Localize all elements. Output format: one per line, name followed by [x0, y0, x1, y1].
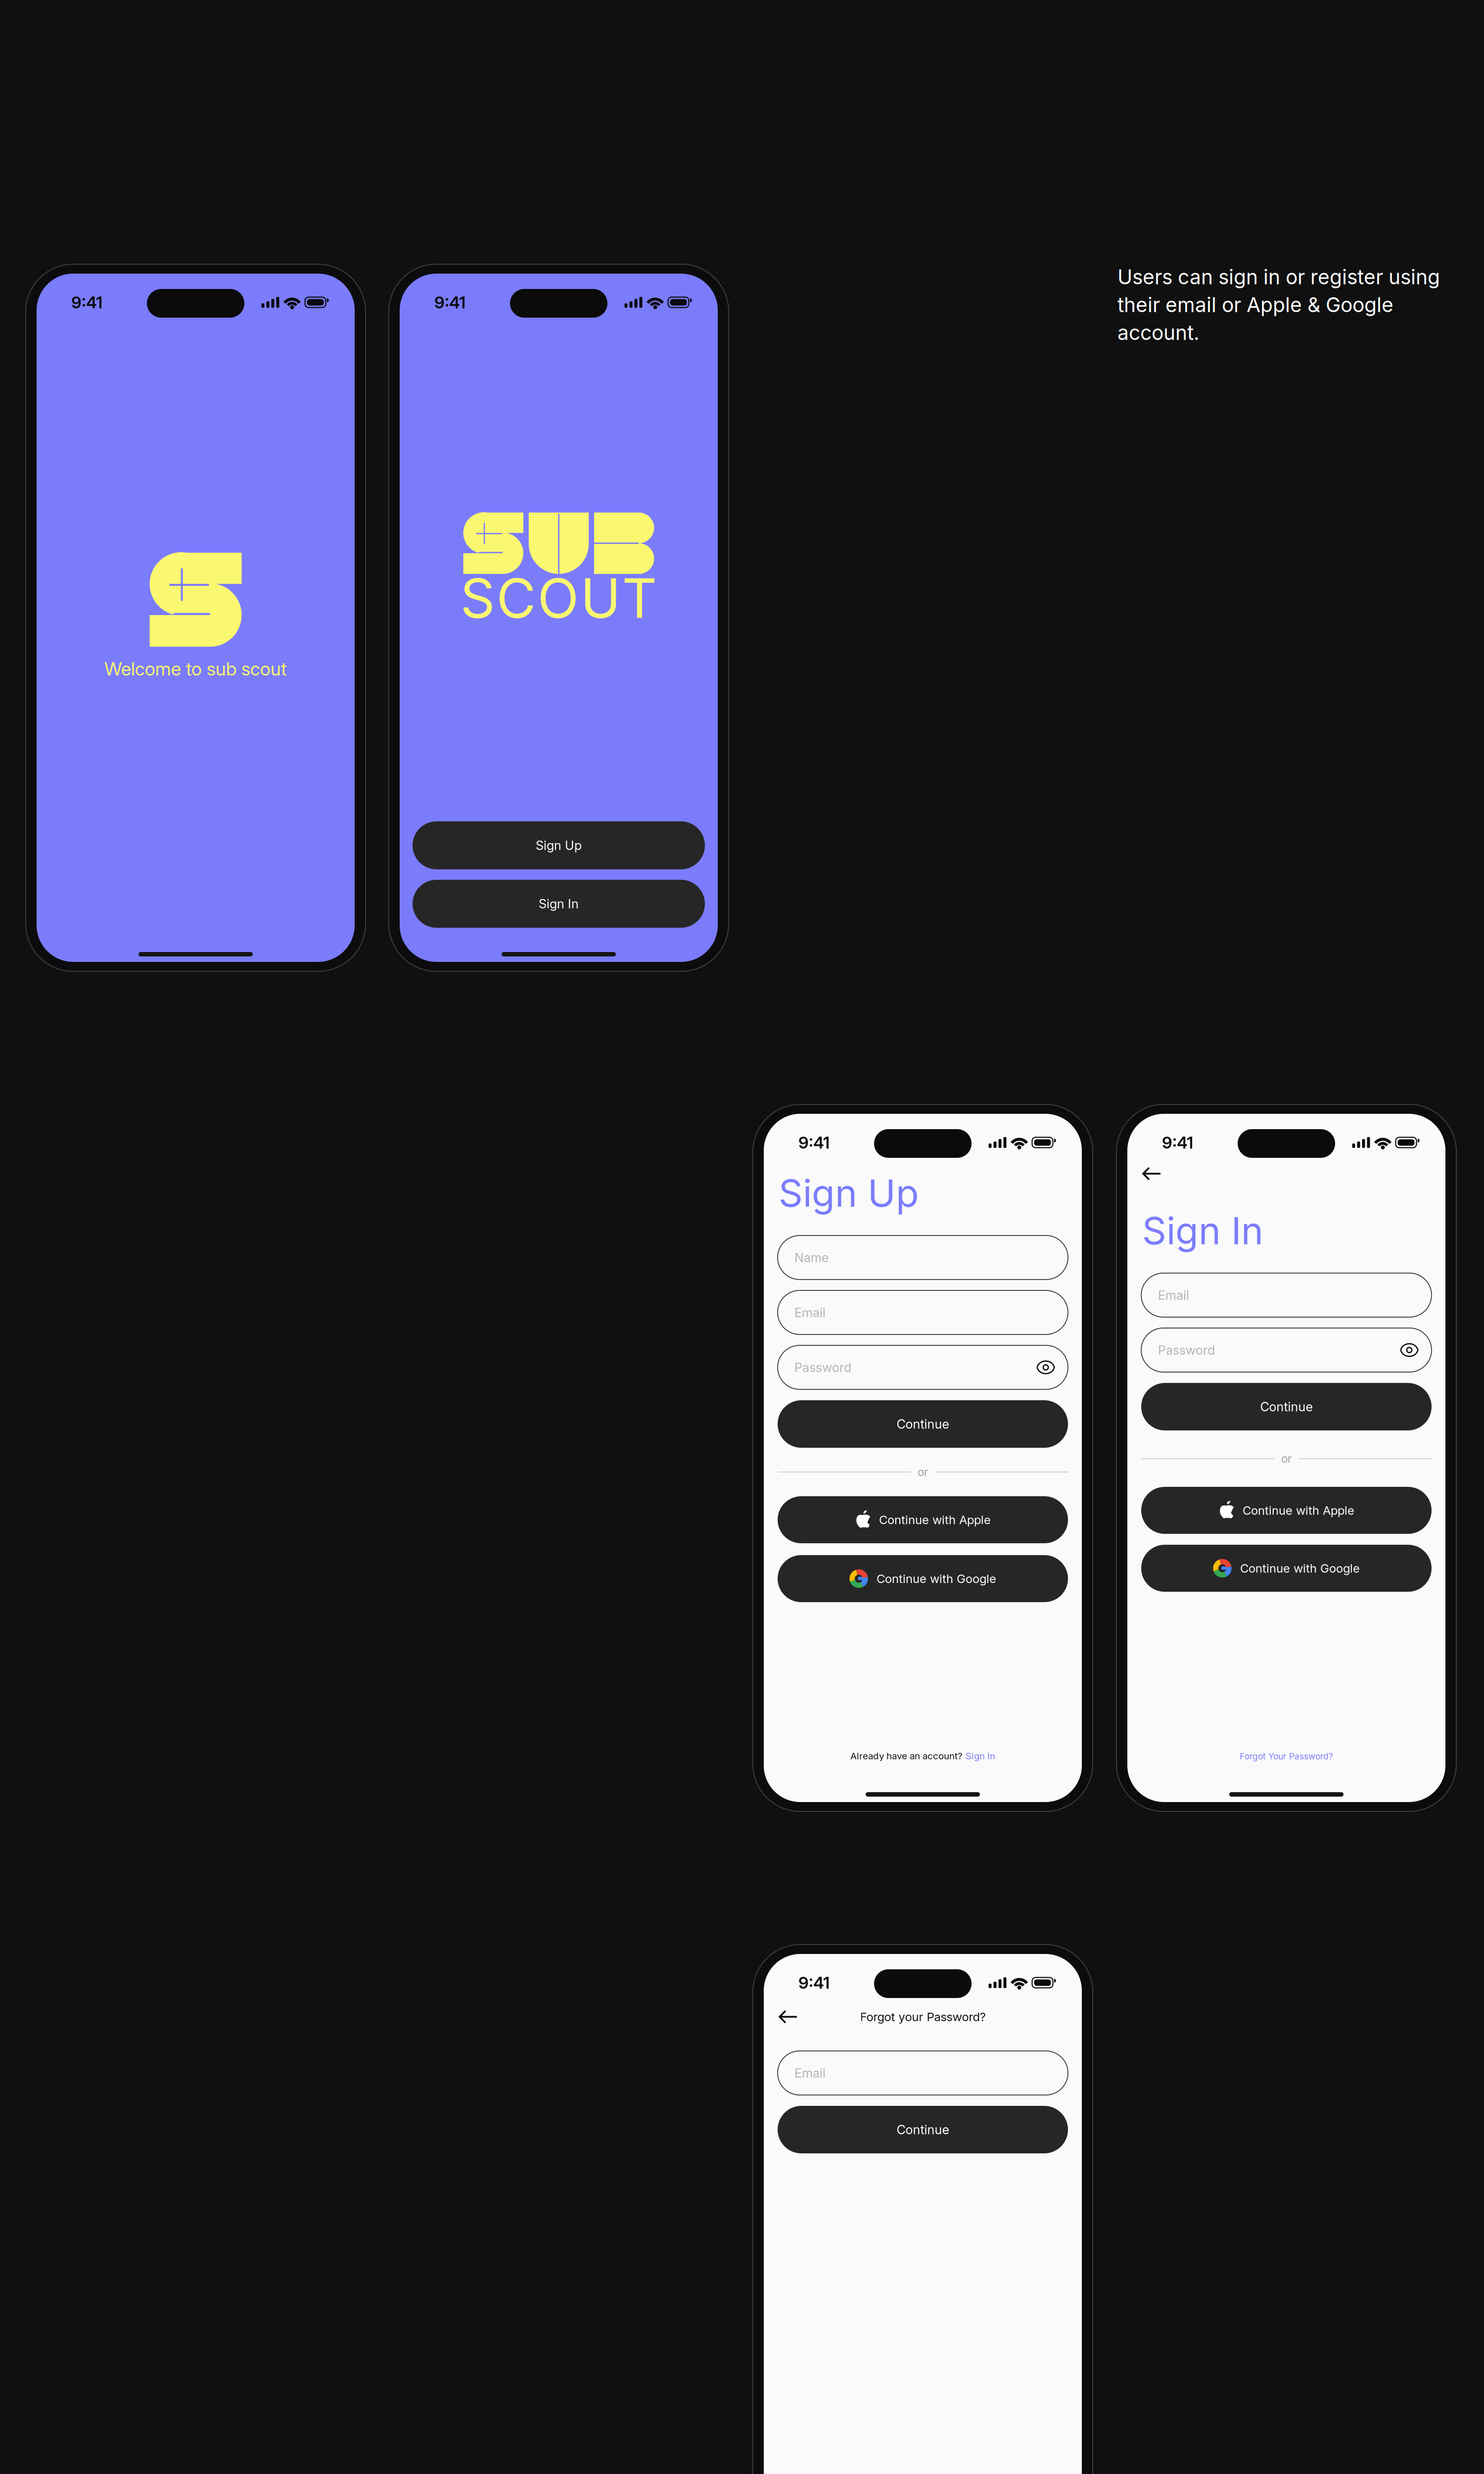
button[interactable]: Forgot Your Password? [1240, 1751, 1333, 1761]
staticText: or [1281, 1452, 1292, 1465]
staticText: Name [794, 1250, 829, 1265]
staticText: 9:41 [71, 292, 102, 312]
staticText: Welcome to sub scout [104, 658, 287, 680]
staticText: Password [794, 1360, 851, 1375]
button[interactable]: Sign Up [413, 821, 705, 869]
staticText: 9:41 [798, 1973, 830, 1993]
staticText: Sign Up [779, 1170, 919, 1216]
button[interactable]: Back [1138, 1162, 1165, 1185]
staticText: account. [1117, 320, 1200, 345]
staticText: Forgot Your Password? [1240, 1751, 1333, 1761]
staticText: Sign Up [536, 838, 582, 853]
button[interactable]: Continue [778, 1400, 1068, 1448]
button[interactable]: Continue with Apple [778, 1496, 1068, 1543]
staticText: 9:41 [1162, 1132, 1193, 1152]
staticText: Already have an account? [850, 1750, 963, 1761]
button[interactable]: Continue [778, 2106, 1068, 2153]
staticText: or [918, 1465, 928, 1479]
button[interactable]: Already have an account? [850, 1750, 995, 1761]
staticText: SCOUT [460, 566, 657, 631]
staticText: Email [1158, 1288, 1189, 1303]
button[interactable]: Sign In [413, 880, 705, 928]
staticText: Continue [897, 2122, 949, 2137]
staticText: Continue with Apple [879, 1513, 991, 1527]
button[interactable]: Continue with Google [778, 1555, 1068, 1602]
staticText: Sign In [539, 896, 579, 911]
staticText: Continue with Google [877, 1571, 996, 1586]
staticText: Continue with Apple [1243, 1503, 1354, 1518]
staticText: Continue [897, 1416, 949, 1432]
button[interactable]: Continue [1141, 1383, 1432, 1430]
button[interactable]: Continue with Apple [1141, 1487, 1432, 1534]
staticText: Sign In [966, 1750, 995, 1761]
staticText: Email [794, 2065, 826, 2081]
staticText: 9:41 [434, 292, 465, 312]
staticText: their email or Apple & Google [1117, 293, 1393, 317]
staticText: Sign In [1142, 1208, 1263, 1253]
staticText: 9:41 [798, 1132, 830, 1152]
staticText: Email [794, 1305, 826, 1320]
staticText: Password [1158, 1342, 1215, 1358]
button[interactable]: Continue with Google [1141, 1545, 1432, 1592]
button[interactable]: Back [774, 2005, 802, 2028]
staticText: Users can sign in or register using [1117, 265, 1440, 289]
staticText: Continue with Google [1240, 1561, 1360, 1575]
staticText: Continue [1260, 1399, 1313, 1414]
staticText: Forgot your Password? [860, 2010, 986, 2024]
